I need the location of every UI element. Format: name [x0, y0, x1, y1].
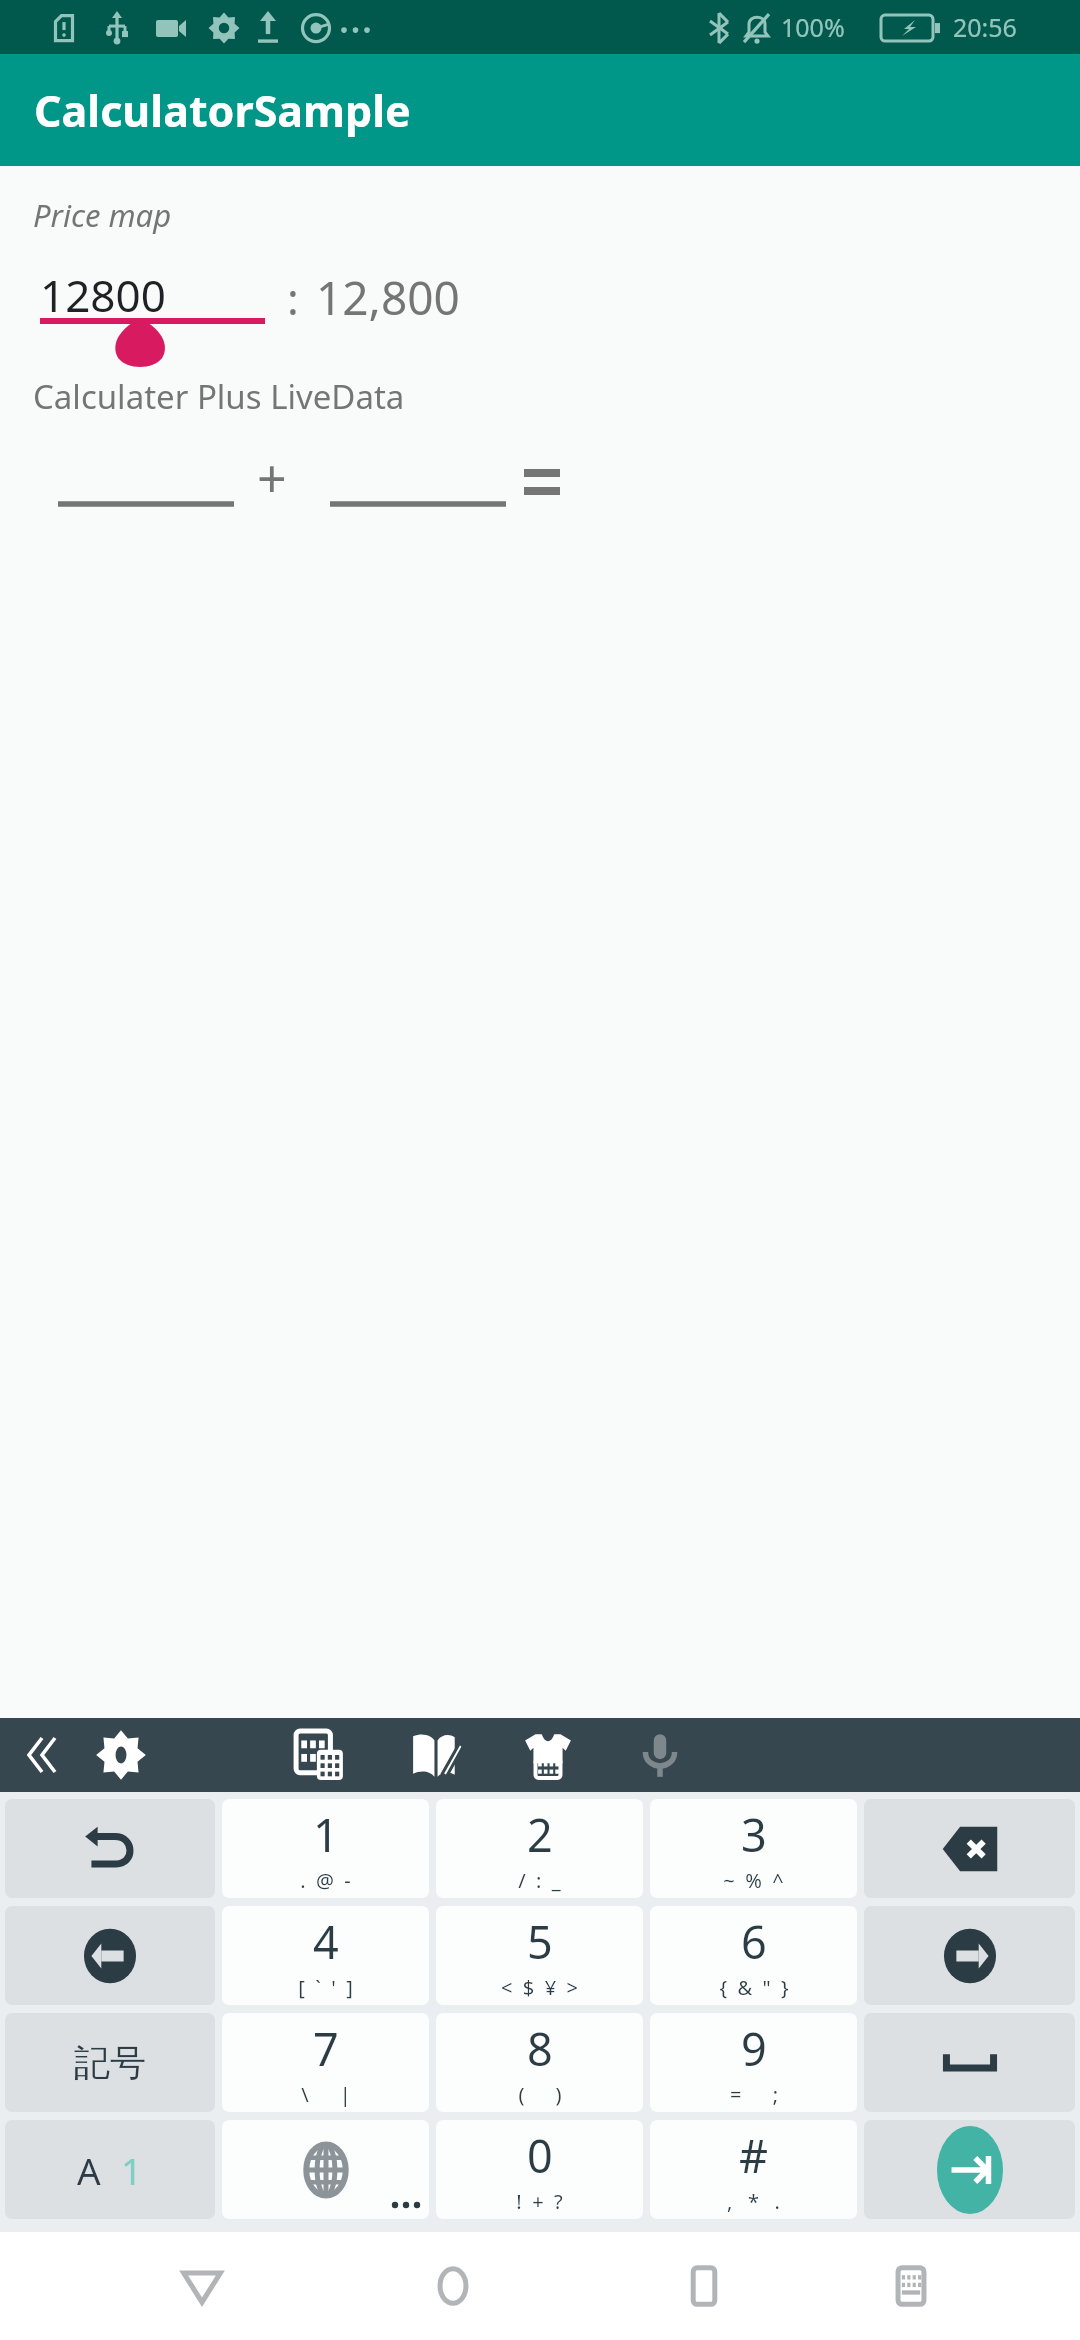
- button[interactable]: 記号: [5, 2013, 215, 2112]
- button[interactable]: Home: [405, 2232, 501, 2340]
- button[interactable]: Key: [864, 1906, 1075, 2005]
- button[interactable]: Key: [5, 1906, 215, 2005]
- staticText: +: [257, 442, 287, 513]
- button[interactable]: [312, 448, 522, 508]
- staticText: 0: [527, 2125, 553, 2186]
- staticText: ( ): [518, 2081, 562, 2108]
- button[interactable]: 7: [222, 2013, 429, 2112]
- button[interactable]: Key: [5, 1799, 215, 1898]
- staticText: CalculatorSample: [34, 81, 411, 140]
- staticText: 6: [741, 1911, 767, 1972]
- staticText: 1: [313, 1804, 339, 1865]
- staticText: 12800: [40, 265, 166, 325]
- button[interactable]: Change language: [222, 2120, 429, 2219]
- staticText: 4: [313, 1911, 339, 1972]
- staticText: < $ ¥ >: [501, 1974, 578, 2001]
- button[interactable]: Themes: [500, 1718, 596, 1792]
- staticText: ! + ?: [516, 2188, 563, 2215]
- staticText: 5: [527, 1911, 553, 1972]
- staticText: 2: [527, 1804, 553, 1865]
- button[interactable]: Calculator: [272, 1718, 368, 1792]
- button[interactable]: 2: [436, 1799, 643, 1898]
- staticText: A: [77, 2145, 101, 2195]
- staticText: { & " }: [719, 1974, 789, 2001]
- button[interactable]: Dictionary: [388, 1718, 484, 1792]
- button[interactable]: 8: [436, 2013, 643, 2112]
- staticText: 7: [313, 2018, 339, 2079]
- button[interactable]: Settings: [76, 1718, 166, 1792]
- button[interactable]: Key: [864, 1799, 1075, 1898]
- staticText: 記号: [74, 2040, 146, 2085]
- button[interactable]: Keyboard: [863, 2232, 959, 2340]
- staticText: 9: [741, 2018, 767, 2079]
- staticText: Price map: [33, 194, 172, 236]
- button[interactable]: Recents: [656, 2232, 752, 2340]
- staticText: 1: [121, 2145, 143, 2195]
- staticText: 12,800: [316, 266, 460, 329]
- button[interactable]: Voice input: [612, 1718, 708, 1792]
- button[interactable]: 12800: [40, 261, 265, 329]
- button[interactable]: 4: [222, 1906, 429, 2005]
- staticText: 8: [527, 2018, 553, 2079]
- staticText: 100%: [781, 10, 845, 44]
- staticText: ~ % ^: [723, 1867, 784, 1894]
- staticText: #: [739, 2125, 769, 2186]
- staticText: \ |: [301, 2081, 351, 2108]
- button[interactable]: A: [5, 2120, 215, 2219]
- staticText: Calculater Plus LiveData: [33, 374, 405, 419]
- button[interactable]: 0: [436, 2120, 643, 2219]
- staticText: [ ` ' ]: [298, 1974, 353, 2001]
- staticText: / : _: [518, 1867, 561, 1894]
- button[interactable]: 3: [650, 1799, 857, 1898]
- button[interactable]: #: [650, 2120, 857, 2219]
- staticText: 20:56: [953, 10, 1017, 44]
- button[interactable]: 1: [222, 1799, 429, 1898]
- button[interactable]: 6: [650, 1906, 857, 2005]
- staticText: :: [287, 268, 299, 328]
- staticText: = ;: [730, 2081, 778, 2108]
- staticText: 3: [741, 1804, 767, 1865]
- staticText: . @ -: [300, 1867, 351, 1894]
- button[interactable]: 9: [650, 2013, 857, 2112]
- button[interactable]: Back: [154, 2232, 250, 2340]
- staticText: , * .: [727, 2188, 780, 2215]
- button[interactable]: Key: [864, 2013, 1075, 2112]
- button[interactable]: [40, 448, 250, 508]
- button[interactable]: Enter: [864, 2120, 1075, 2219]
- button[interactable]: 5: [436, 1906, 643, 2005]
- button[interactable]: Collapse: [10, 1718, 70, 1792]
